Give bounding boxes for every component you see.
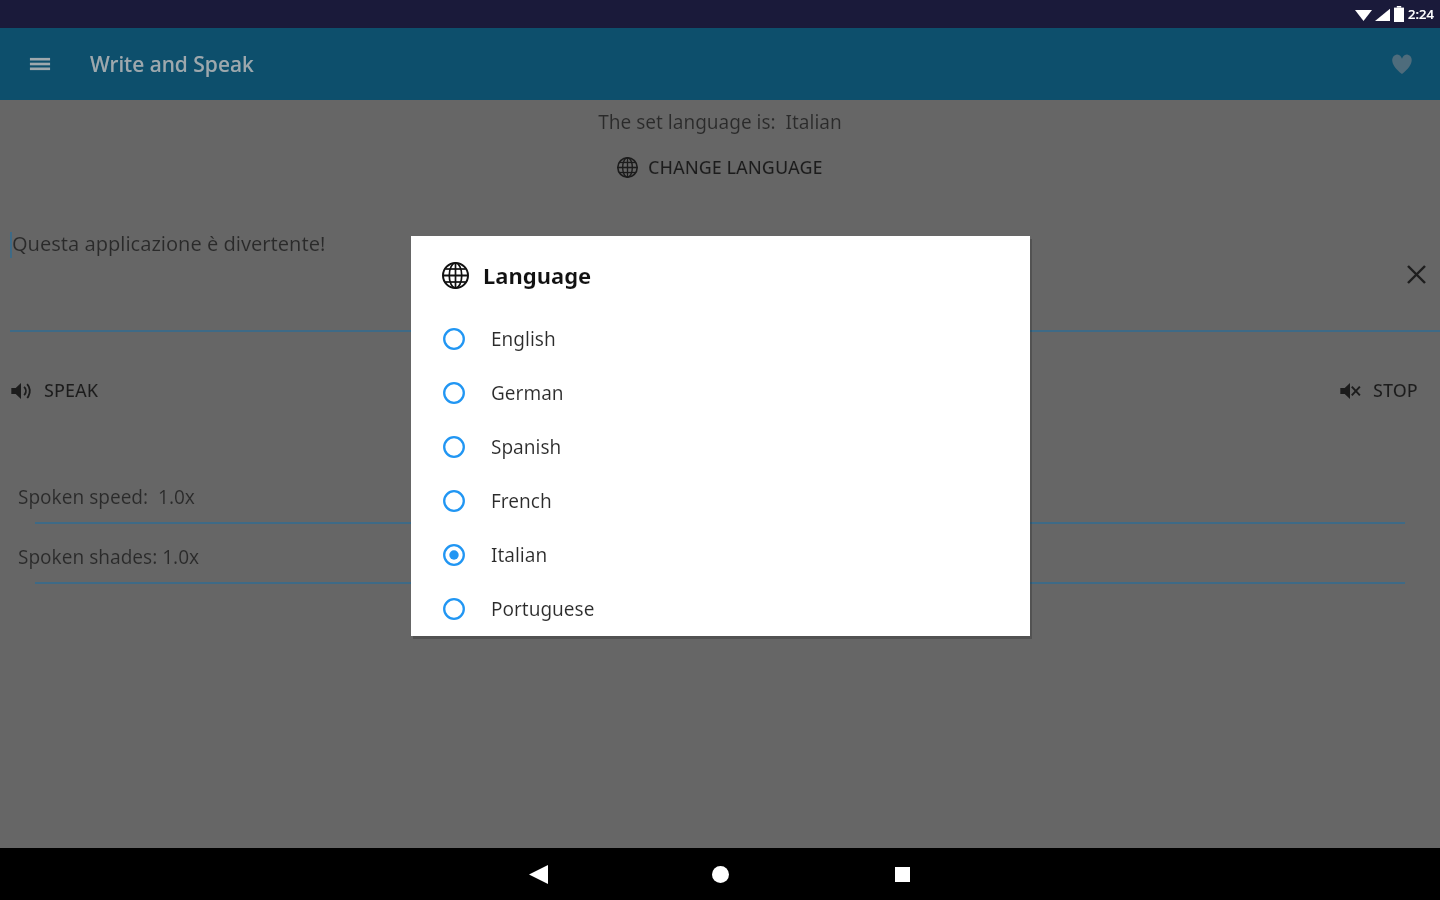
staticText: STOP — [1373, 378, 1418, 403]
button[interactable]: Portuguese — [411, 582, 1030, 636]
button[interactable]: Back — [512, 848, 564, 900]
staticText: Spoken speed: 1.0x — [18, 484, 195, 510]
staticText: Italian — [491, 542, 548, 568]
button[interactable]: English — [411, 312, 1030, 366]
staticText: SPEAK — [44, 378, 99, 403]
button[interactable]: STOP — [1339, 378, 1418, 403]
staticText: Language — [483, 260, 592, 290]
button[interactable]: Home — [694, 848, 746, 900]
staticText: Spoken shades: 1.0x — [18, 544, 200, 570]
staticText: English — [491, 326, 556, 352]
button[interactable]: Spanish — [411, 420, 1030, 474]
button[interactable] — [35, 582, 1405, 584]
button[interactable] — [35, 522, 1405, 524]
button[interactable]: French — [411, 474, 1030, 528]
staticText: 2:24 — [1408, 5, 1434, 23]
staticText: German — [491, 380, 564, 406]
staticText: Spanish — [491, 434, 562, 460]
staticText: Portuguese — [491, 596, 595, 622]
button[interactable]: SPEAK — [10, 378, 99, 403]
button[interactable]: CHANGE LANGUAGE — [617, 155, 823, 180]
button[interactable]: Recent apps — [876, 848, 928, 900]
staticText: Write and Speak — [90, 50, 254, 79]
button[interactable]: Questa applicazione è divertente! — [0, 220, 1440, 332]
button[interactable]: Open navigation menu — [16, 40, 64, 88]
staticText: French — [491, 488, 552, 514]
staticText: CHANGE LANGUAGE — [648, 155, 823, 180]
button[interactable]: Favorite — [1378, 40, 1426, 88]
button[interactable]: Italian — [411, 528, 1030, 582]
button[interactable]: Close — [1390, 248, 1440, 300]
staticText: The set language is: Italian — [598, 109, 842, 135]
button[interactable]: German — [411, 366, 1030, 420]
staticText: Questa applicazione è divertente! — [12, 230, 326, 257]
